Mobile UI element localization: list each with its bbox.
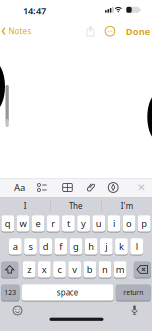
button[interactable]: f	[54, 238, 67, 255]
staticText: Notes	[8, 26, 31, 36]
button[interactable]: h	[85, 238, 98, 255]
button[interactable]: j	[100, 238, 113, 255]
button[interactable]: a	[9, 238, 22, 255]
button[interactable]: q	[1, 215, 14, 232]
staticText: l	[136, 240, 138, 253]
staticText: 123	[4, 288, 16, 297]
staticText: n	[102, 263, 108, 276]
button[interactable]: w	[17, 215, 29, 232]
staticText: j	[105, 240, 107, 253]
button[interactable]: o	[123, 215, 135, 232]
staticText: a	[13, 240, 18, 253]
staticText: return	[123, 288, 143, 297]
button[interactable]: s	[24, 238, 37, 255]
staticText: v	[72, 263, 77, 276]
staticText: x	[42, 263, 47, 276]
button[interactable]: Dismiss	[138, 184, 145, 191]
button[interactable]: i	[107, 215, 120, 232]
button[interactable]: Emoji	[12, 305, 22, 315]
staticText: p	[141, 217, 147, 230]
staticText: g	[73, 240, 79, 253]
button[interactable]: Format	[14, 181, 25, 193]
button[interactable]: y	[77, 215, 90, 232]
staticText: o	[126, 217, 132, 230]
staticText: Done	[126, 25, 151, 38]
button[interactable]: Attach	[87, 182, 94, 193]
staticText: m	[116, 263, 125, 276]
staticText: y	[81, 217, 86, 230]
staticText: c	[57, 263, 61, 276]
button[interactable]: m	[114, 261, 127, 278]
button[interactable]: Shift	[1, 261, 18, 278]
button[interactable]: The	[51, 197, 101, 215]
button[interactable]: b	[83, 261, 96, 278]
button[interactable]: 123	[1, 284, 19, 301]
staticText: s	[28, 240, 32, 253]
button[interactable]: return	[116, 284, 151, 301]
staticText: space	[57, 287, 79, 298]
staticText: k	[119, 240, 124, 253]
staticText: t	[67, 217, 70, 230]
button[interactable]: u	[92, 215, 105, 232]
button[interactable]: Share	[86, 26, 95, 37]
staticText: The	[69, 201, 83, 211]
button[interactable]: z	[23, 261, 36, 278]
button[interactable]: l	[130, 238, 143, 255]
button[interactable]: c	[53, 261, 66, 278]
button[interactable]: Notes	[1, 26, 31, 36]
button[interactable]: Dictation	[129, 305, 139, 315]
staticText: Aa	[14, 181, 25, 193]
button[interactable]: t	[62, 215, 75, 232]
staticText: I'm	[121, 201, 133, 211]
staticText: r	[51, 217, 55, 230]
button[interactable]: p	[138, 215, 151, 232]
button[interactable]: x	[38, 261, 51, 278]
staticText: d	[43, 240, 49, 253]
button[interactable]: Checklist	[37, 182, 47, 192]
button[interactable]: g	[70, 238, 82, 255]
button[interactable]: d	[39, 238, 52, 255]
staticText: q	[5, 217, 11, 230]
staticText: h	[88, 240, 94, 253]
staticText: 14:47	[23, 4, 46, 17]
button[interactable]: Table	[62, 183, 73, 192]
staticText: z	[27, 263, 31, 276]
button[interactable]: space	[22, 284, 113, 301]
button[interactable]: e	[32, 215, 44, 232]
button[interactable]: n	[99, 261, 111, 278]
staticText: e	[36, 217, 41, 230]
staticText: f	[59, 240, 62, 253]
staticText: I	[24, 201, 27, 211]
button[interactable]: Done	[126, 25, 151, 38]
button[interactable]: k	[115, 238, 128, 255]
button[interactable]: r	[47, 215, 60, 232]
staticText: i	[113, 217, 115, 230]
button[interactable]: Markup	[108, 182, 119, 193]
button[interactable]: I'm	[102, 197, 152, 215]
staticText: u	[96, 217, 102, 230]
button[interactable]: I	[0, 197, 50, 215]
button[interactable]: v	[68, 261, 81, 278]
staticText: b	[87, 263, 93, 276]
button[interactable]: More	[104, 26, 115, 37]
staticText: w	[19, 217, 26, 230]
button[interactable]: Delete	[134, 261, 151, 278]
